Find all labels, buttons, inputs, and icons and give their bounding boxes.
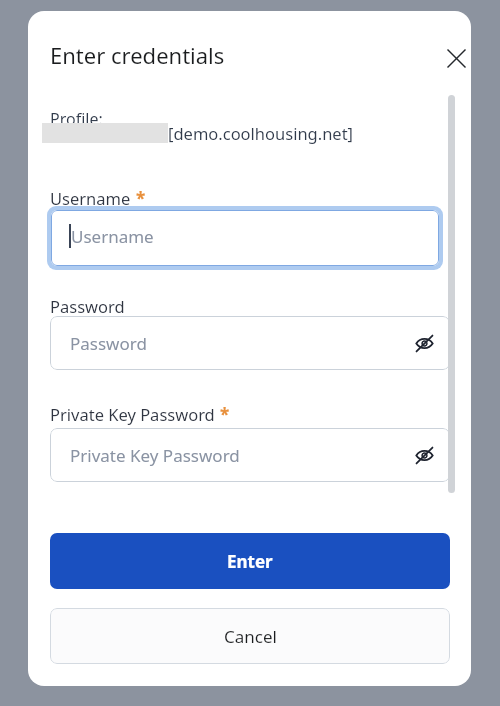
button[interactable]: Close bbox=[437, 39, 471, 77]
button[interactable]: Show password bbox=[406, 437, 442, 473]
button[interactable]: Username bbox=[47, 206, 443, 270]
staticText: Password bbox=[70, 332, 147, 355]
button[interactable]: Password bbox=[50, 316, 450, 370]
button[interactable]: Private Key Password bbox=[50, 428, 450, 482]
staticText: Password bbox=[50, 295, 125, 317]
staticText: Enter credentials bbox=[50, 40, 225, 70]
staticText: * bbox=[220, 403, 230, 426]
staticText: Private Key Password bbox=[70, 444, 240, 467]
staticText: Username bbox=[71, 225, 154, 248]
staticText: Profile: bbox=[50, 108, 103, 130]
staticText: Private Key Password bbox=[50, 403, 215, 425]
staticText: [demo.coolhousing.net] bbox=[168, 122, 354, 144]
staticText: * bbox=[136, 187, 146, 210]
staticText: Cancel bbox=[224, 625, 277, 648]
staticText: Username bbox=[50, 187, 131, 209]
button[interactable]: Show password bbox=[406, 325, 442, 361]
staticText: Enter bbox=[227, 550, 273, 573]
button[interactable]: Enter bbox=[50, 533, 450, 589]
button[interactable]: Cancel bbox=[50, 608, 450, 664]
